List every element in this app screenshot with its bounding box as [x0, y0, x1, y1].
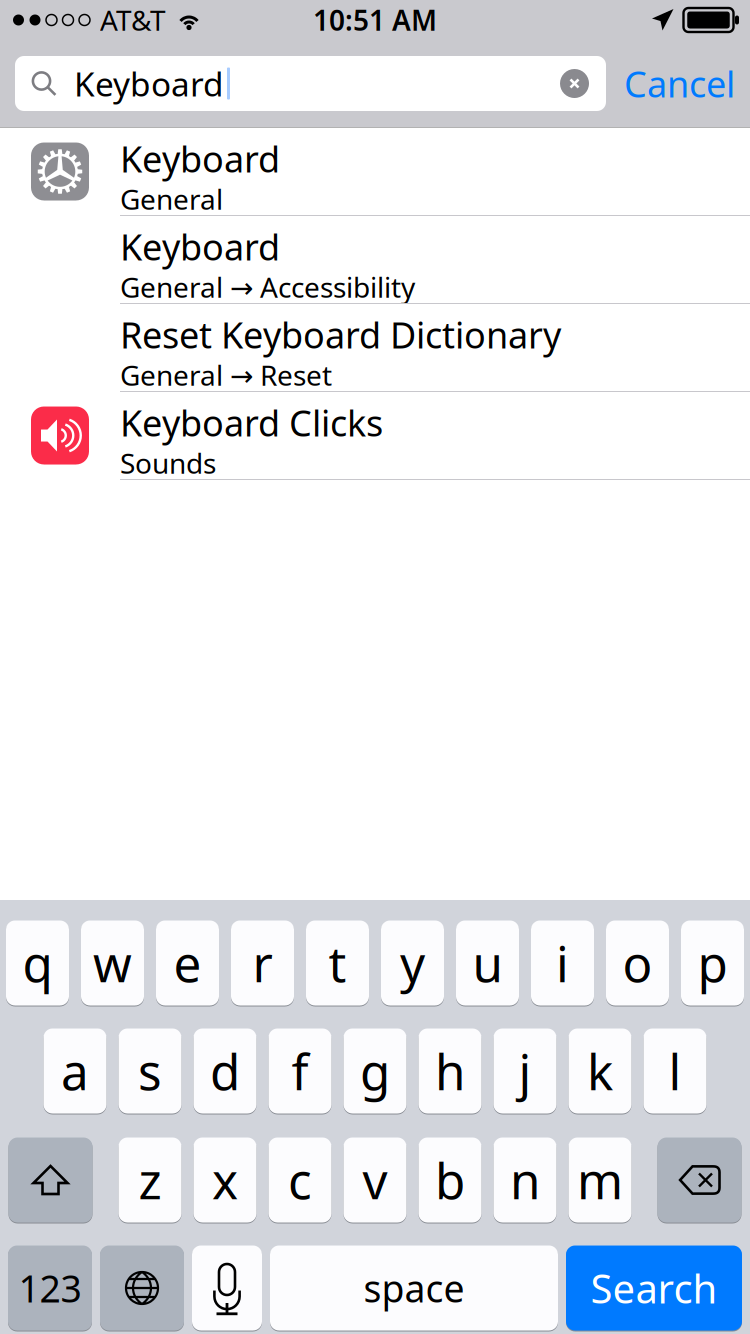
button[interactable]: Delete: [657, 1136, 741, 1223]
staticText: Keyboard: [120, 134, 280, 182]
button[interactable]: p: [681, 919, 744, 1006]
button[interactable]: s: [118, 1027, 181, 1114]
staticText: q: [22, 930, 52, 996]
button[interactable]: k: [568, 1027, 631, 1114]
button[interactable]: w: [81, 919, 144, 1006]
button[interactable]: b: [418, 1136, 481, 1223]
button[interactable]: f: [268, 1027, 331, 1114]
staticText: Sounds: [120, 444, 216, 481]
button[interactable]: n: [493, 1136, 556, 1223]
button[interactable]: i: [531, 919, 594, 1006]
staticText: i: [556, 930, 569, 996]
button[interactable]: e: [156, 919, 219, 1006]
staticText: w: [93, 930, 132, 996]
button[interactable]: q: [6, 919, 69, 1006]
button[interactable]: a: [43, 1027, 106, 1114]
button[interactable]: Cancel: [606, 56, 750, 111]
staticText: j: [518, 1038, 531, 1104]
button[interactable]: Shift: [8, 1136, 92, 1223]
button[interactable]: t: [306, 919, 369, 1006]
button[interactable]: Keyboard: [0, 216, 750, 304]
staticText: g: [360, 1038, 390, 1104]
staticText: space: [363, 1263, 464, 1313]
staticText: x: [212, 1147, 238, 1213]
staticText: c: [288, 1147, 312, 1213]
button[interactable]: Next keyboard: [100, 1244, 184, 1331]
button[interactable]: j: [493, 1027, 556, 1114]
staticText: Keyboard: [74, 61, 224, 106]
staticText: General → Accessibility: [120, 268, 415, 305]
staticText: p: [697, 930, 727, 996]
button[interactable]: Search: [566, 1244, 742, 1331]
staticText: d: [210, 1038, 240, 1104]
button[interactable]: Clear text: [560, 69, 589, 98]
button[interactable]: Reset Keyboard Dictionary: [0, 304, 750, 392]
staticText: 10:51 AM: [313, 1, 437, 39]
button[interactable]: z: [118, 1136, 181, 1223]
staticText: k: [587, 1038, 613, 1104]
button[interactable]: 123: [8, 1244, 92, 1331]
staticText: b: [435, 1147, 465, 1213]
staticText: General: [120, 180, 223, 217]
staticText: o: [622, 930, 652, 996]
button[interactable]: g: [343, 1027, 406, 1114]
button[interactable]: h: [418, 1027, 481, 1114]
staticText: n: [510, 1147, 540, 1213]
button[interactable]: y: [381, 919, 444, 1006]
staticText: a: [61, 1038, 89, 1104]
staticText: z: [138, 1147, 161, 1213]
button[interactable]: o: [606, 919, 669, 1006]
staticText: m: [577, 1147, 623, 1213]
staticText: 123: [18, 1263, 81, 1313]
button[interactable]: d: [193, 1027, 256, 1114]
staticText: Search: [590, 1261, 717, 1314]
staticText: y: [400, 930, 425, 996]
button[interactable]: x: [193, 1136, 256, 1223]
button[interactable]: c: [268, 1136, 331, 1223]
staticText: e: [173, 930, 201, 996]
staticText: v: [362, 1147, 387, 1213]
button[interactable]: v: [343, 1136, 406, 1223]
button[interactable]: space: [270, 1244, 558, 1331]
button[interactable]: Keyboard Clicks: [0, 392, 750, 480]
staticText: l: [668, 1038, 681, 1104]
staticText: u: [472, 930, 502, 996]
staticText: r: [252, 930, 272, 996]
button[interactable]: l: [643, 1027, 706, 1114]
button[interactable]: Keyboard: [0, 128, 750, 216]
staticText: h: [435, 1038, 465, 1104]
button[interactable]: r: [231, 919, 294, 1006]
staticText: Cancel: [624, 60, 735, 107]
button[interactable]: Dictate: [192, 1244, 262, 1331]
staticText: s: [138, 1038, 162, 1104]
button[interactable]: u: [456, 919, 519, 1006]
staticText: t: [328, 930, 346, 996]
staticText: AT&T: [100, 1, 166, 39]
staticText: General → Reset: [120, 356, 332, 393]
staticText: f: [291, 1038, 308, 1104]
staticText: Reset Keyboard Dictionary: [120, 310, 561, 358]
staticText: Keyboard: [120, 222, 280, 270]
button[interactable]: m: [568, 1136, 631, 1223]
staticText: Keyboard Clicks: [120, 398, 383, 446]
